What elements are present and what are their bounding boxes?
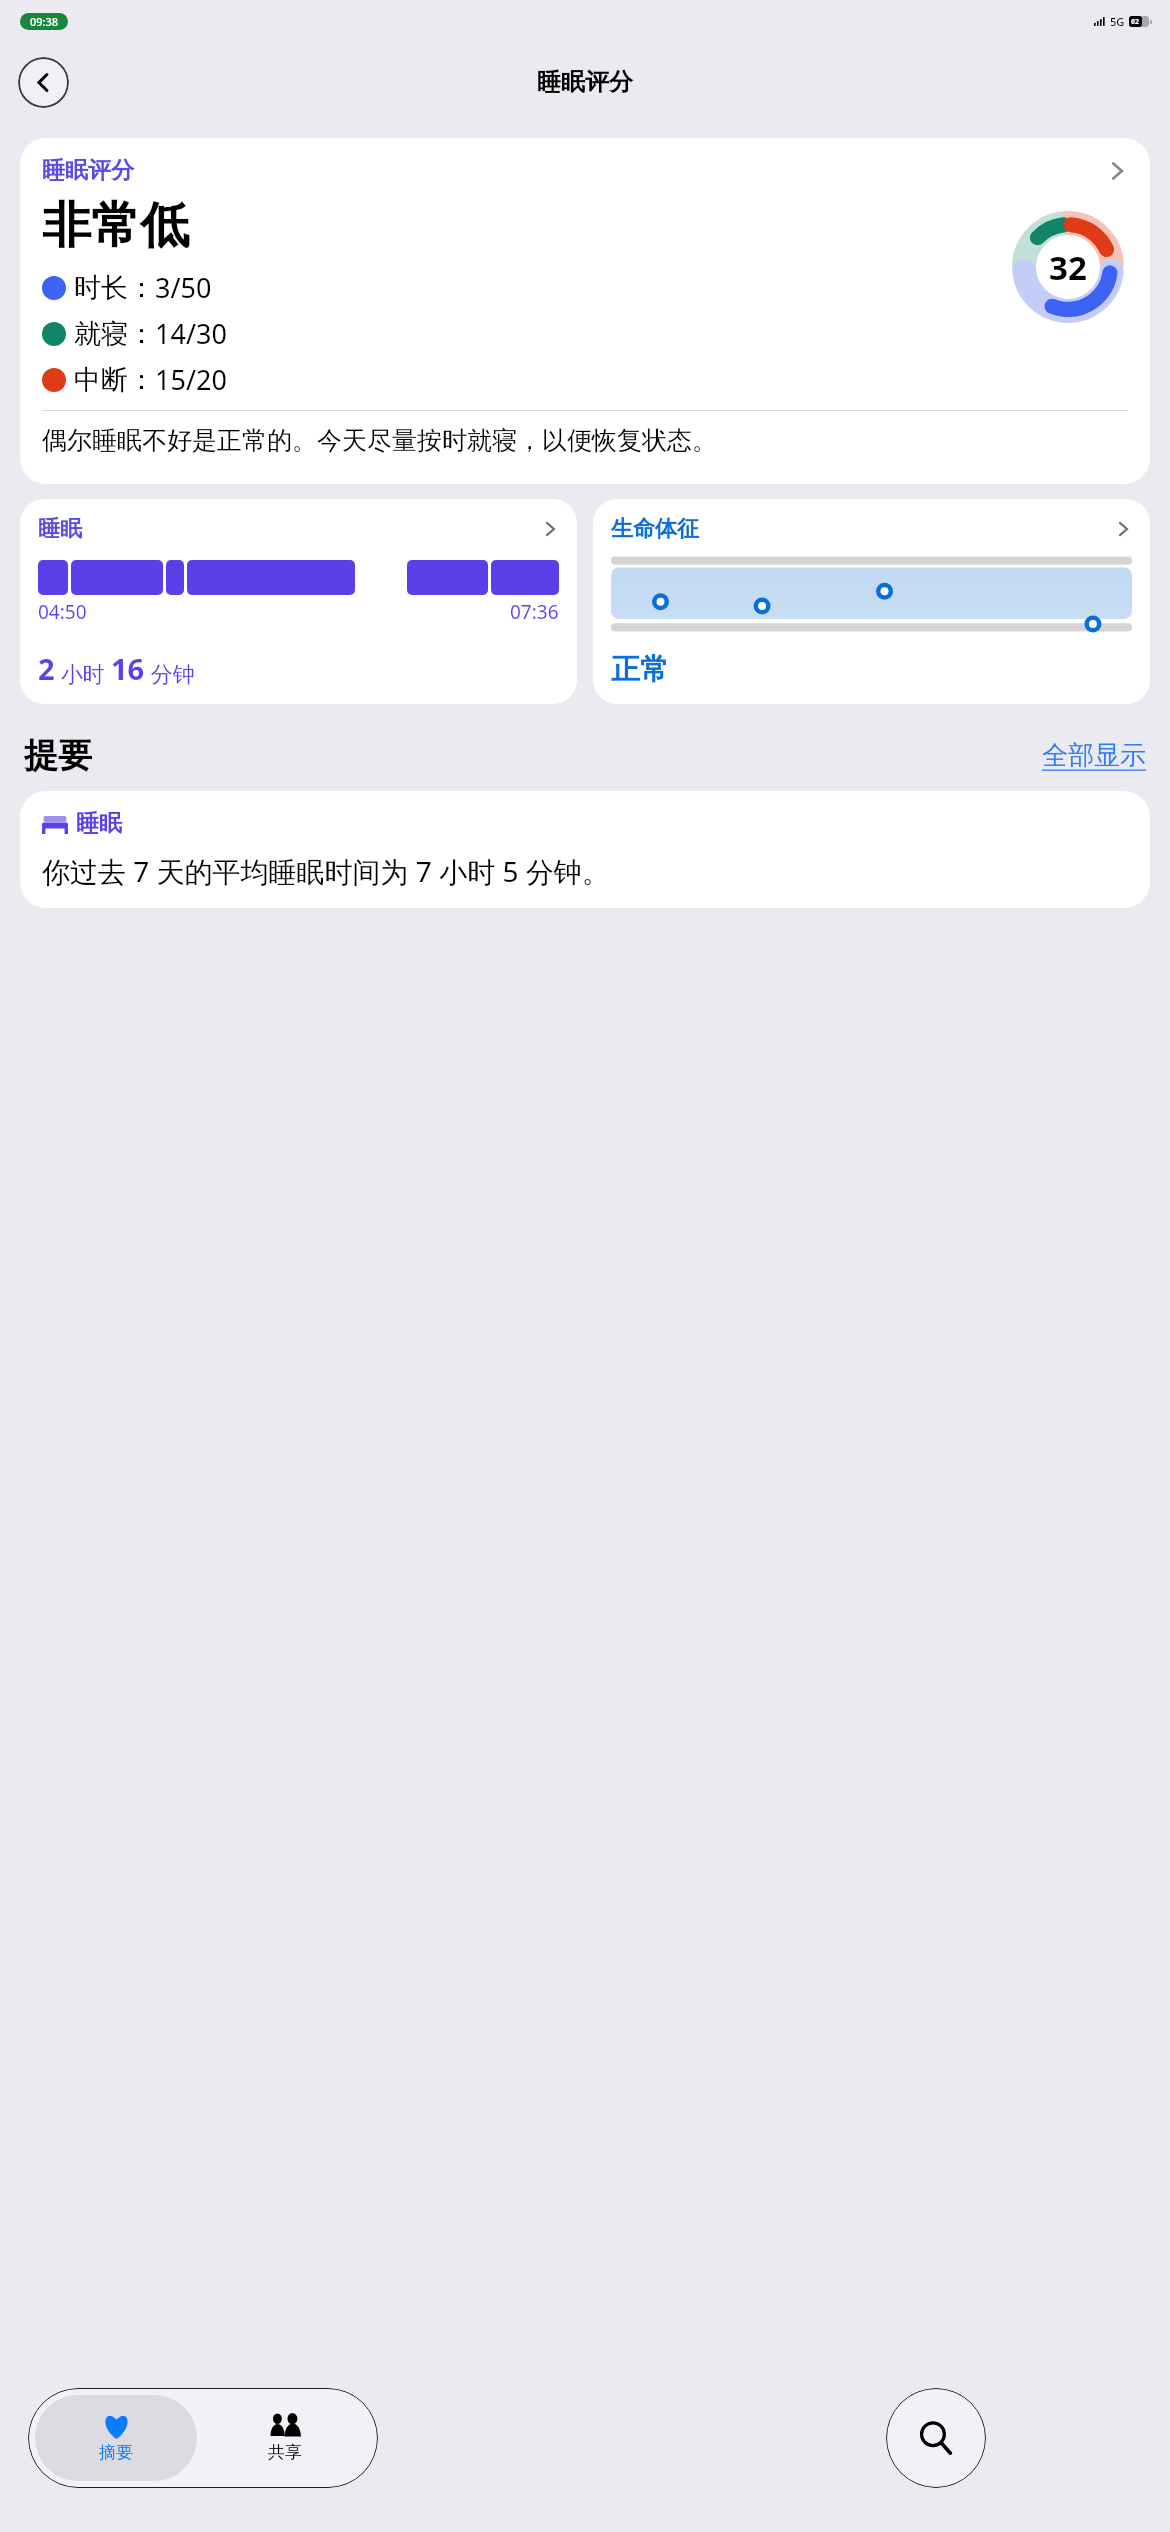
button[interactable]: 摘要 — [35, 2395, 197, 2481]
staticText: 你过去 7 天的平均睡眠时间为 7 小时 5 分钟。 — [42, 852, 610, 890]
staticText: 睡眠 — [76, 809, 122, 838]
button[interactable]: 全部显示 — [1042, 739, 1146, 772]
staticText: 睡眠评分 — [42, 156, 134, 185]
staticText: 正常 — [611, 651, 669, 688]
staticText: 生命体征 — [611, 515, 699, 543]
staticText: 14/30 — [155, 315, 227, 352]
staticText: 时长： — [74, 271, 155, 305]
button[interactable]: 睡眠评分 — [20, 138, 1150, 484]
staticText: 摘要 — [99, 2442, 133, 2463]
staticText: 5G — [1110, 14, 1125, 29]
button[interactable]: 睡眠 — [20, 499, 577, 704]
staticText: 2 — [38, 649, 55, 688]
staticText: 16 — [111, 649, 145, 688]
button[interactable]: 睡眠 — [20, 791, 1150, 908]
staticText: 全部显示 — [1042, 739, 1146, 772]
staticText: 62 — [1131, 17, 1140, 27]
staticText: 32 — [1049, 245, 1087, 290]
staticText: 偶尔睡眠不好是正常的。今天尽量按时就寝，以便恢复状态。 — [42, 425, 717, 456]
staticText: 睡眠 — [38, 515, 82, 543]
staticText: 15/20 — [155, 361, 227, 398]
staticText: 共享 — [268, 2442, 302, 2463]
staticText: 3/50 — [155, 269, 212, 306]
staticText: 睡眠评分 — [537, 67, 633, 97]
button[interactable]: 生命体征 — [593, 499, 1150, 704]
staticText: 分钟 — [145, 658, 195, 688]
staticText: 中断： — [74, 363, 155, 397]
staticText: 提要 — [24, 734, 92, 777]
button[interactable]: 共享 — [204, 2395, 366, 2481]
staticText: 非常低 — [42, 195, 189, 257]
button[interactable]: Search — [886, 2388, 986, 2488]
staticText: 07:36 — [510, 599, 559, 625]
staticText: 就寝： — [74, 317, 155, 351]
staticText: 09:38 — [30, 14, 59, 29]
button[interactable]: Back — [18, 57, 69, 108]
staticText: 04:50 — [38, 599, 87, 625]
staticText: 小时 — [55, 658, 111, 688]
